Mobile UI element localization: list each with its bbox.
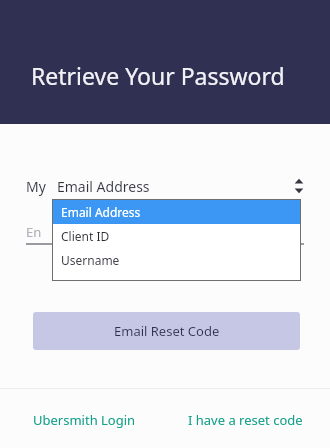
button[interactable]: Client ID [53,224,300,248]
staticText: Username [61,252,120,268]
button[interactable]: Email Address [57,173,304,199]
staticText: Email Reset Code [114,322,220,340]
staticText: Email Address [61,204,141,220]
button[interactable]: Username [53,248,300,272]
button[interactable]: Ubersmith Login [22,406,147,434]
staticText: I have a reset code [188,411,303,429]
staticText: Retrieve Your Password [31,60,285,91]
button[interactable]: Email Address [53,200,300,224]
button[interactable]: En [26,221,304,243]
staticText: Email Address [57,177,150,196]
other: Open selector [294,177,304,195]
button[interactable]: Email Reset Code [33,312,300,350]
button[interactable]: I have a reset code [180,406,310,434]
staticText: En [26,223,42,241]
staticText: Client ID [61,228,110,244]
staticText: Ubersmith Login [33,411,136,429]
staticText: My [26,177,46,196]
